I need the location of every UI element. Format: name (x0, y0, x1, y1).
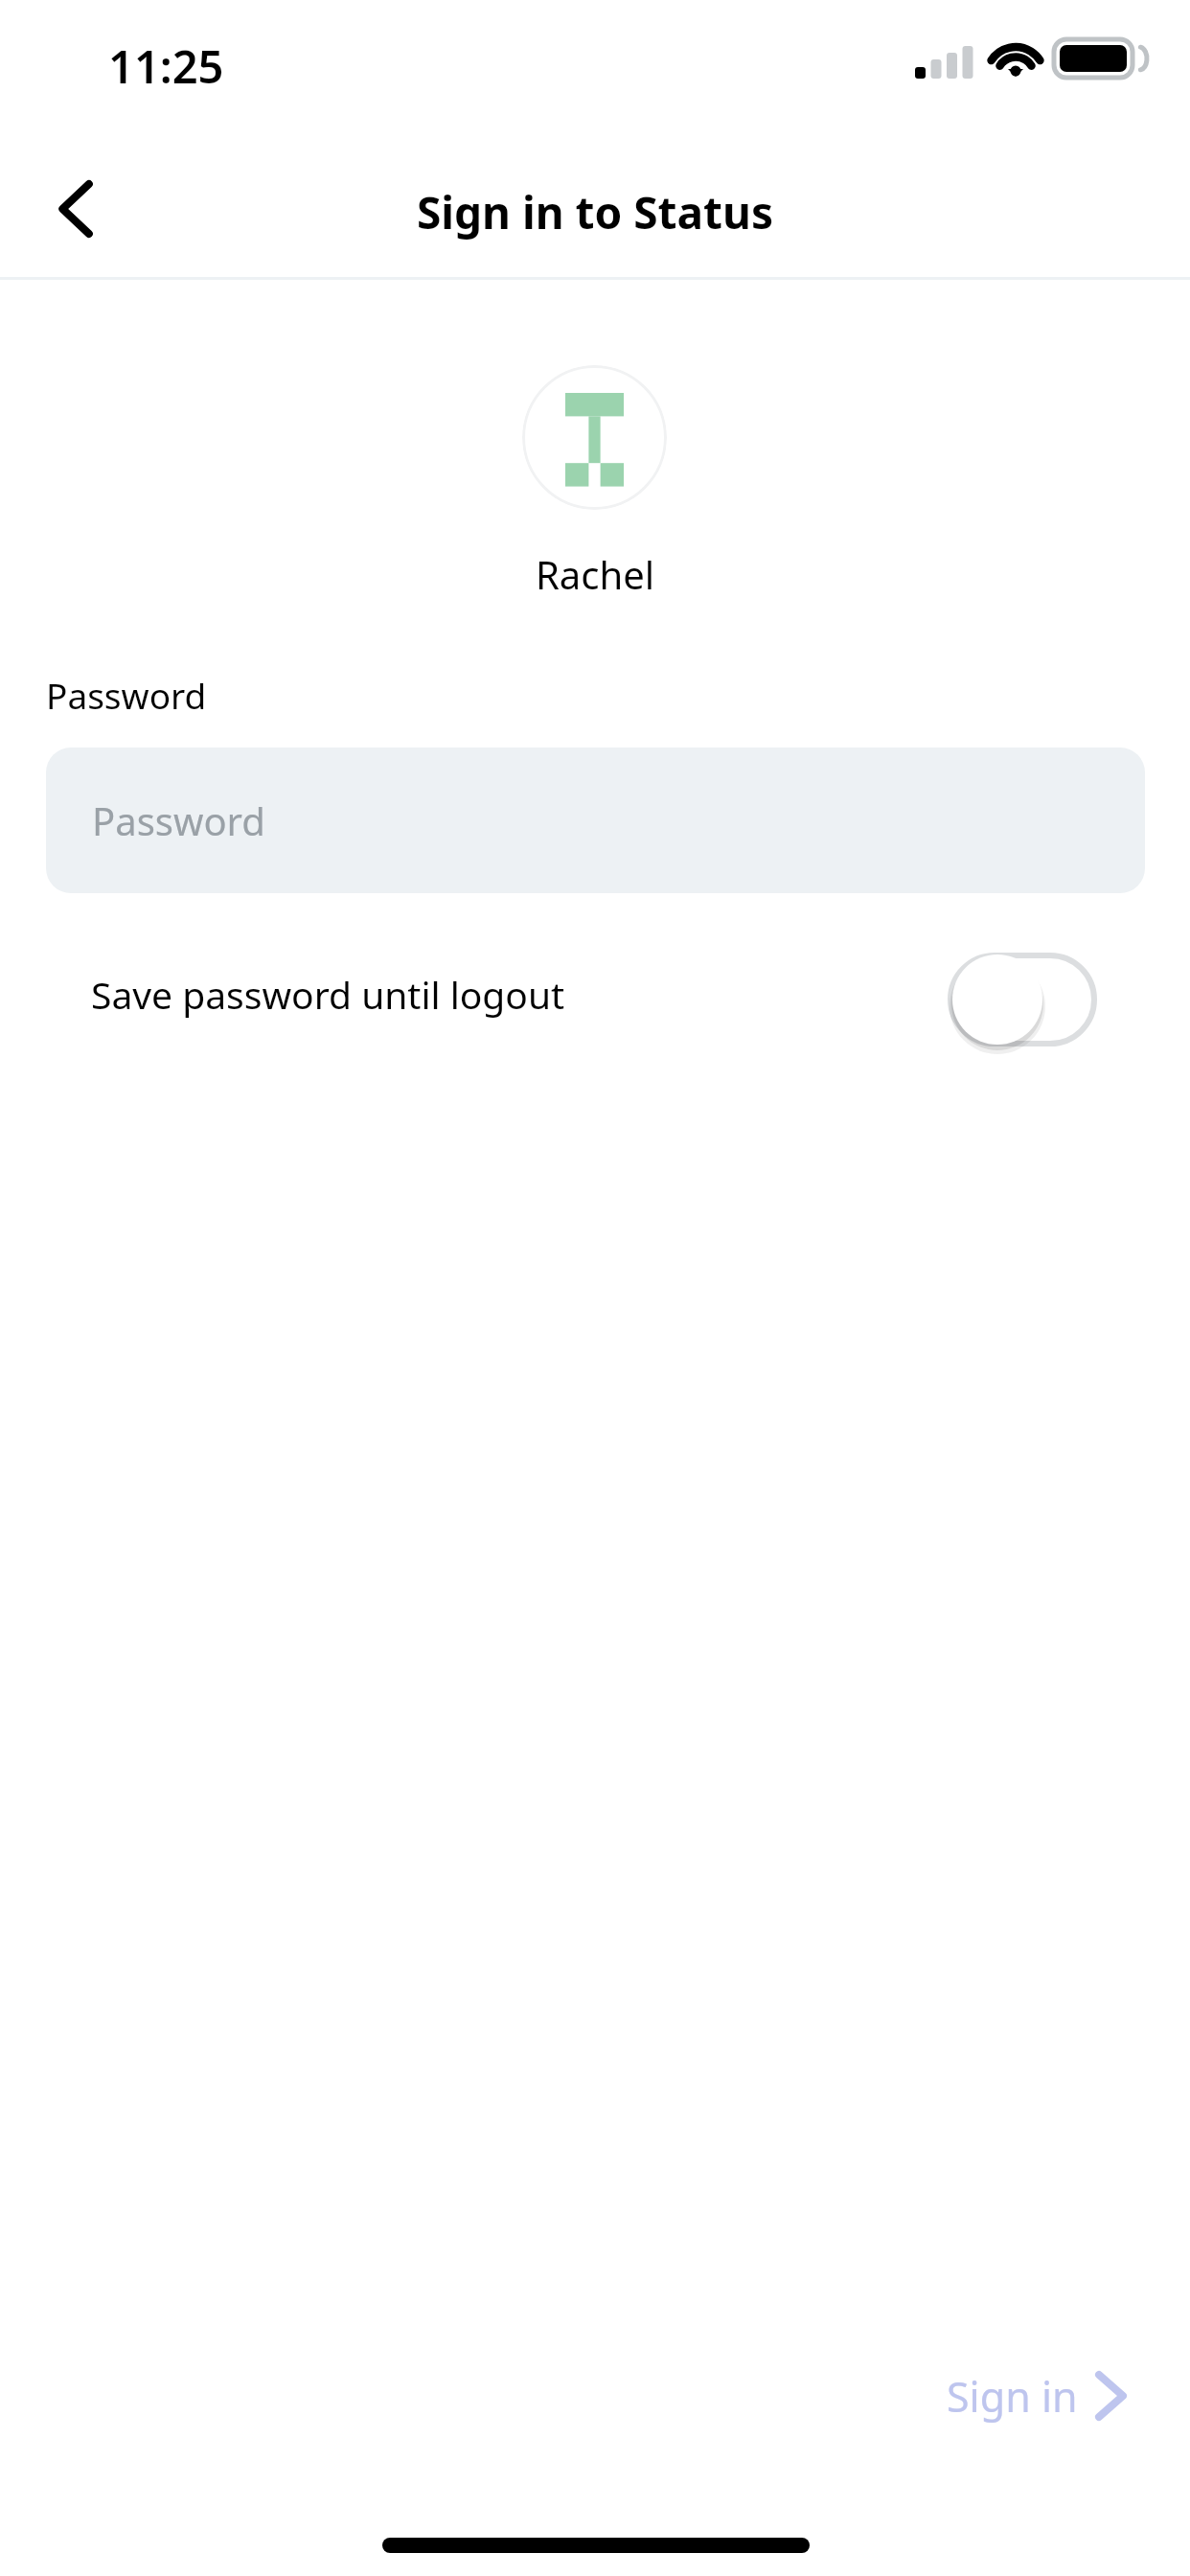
staticText: 11:25 (108, 35, 224, 97)
button[interactable]: Password (46, 747, 1145, 893)
button[interactable]: Back (29, 161, 125, 257)
staticText: Rachel (0, 548, 1190, 600)
staticText: Save password until logout (91, 969, 565, 1020)
staticText: Password (92, 794, 265, 846)
staticText: Sign in (947, 2368, 1078, 2425)
staticText: Sign in to Status (0, 182, 1190, 242)
button[interactable]: Save password until logout (0, 934, 1190, 1054)
staticText: Password (46, 671, 207, 719)
button[interactable]: Sign in (920, 2343, 1155, 2449)
